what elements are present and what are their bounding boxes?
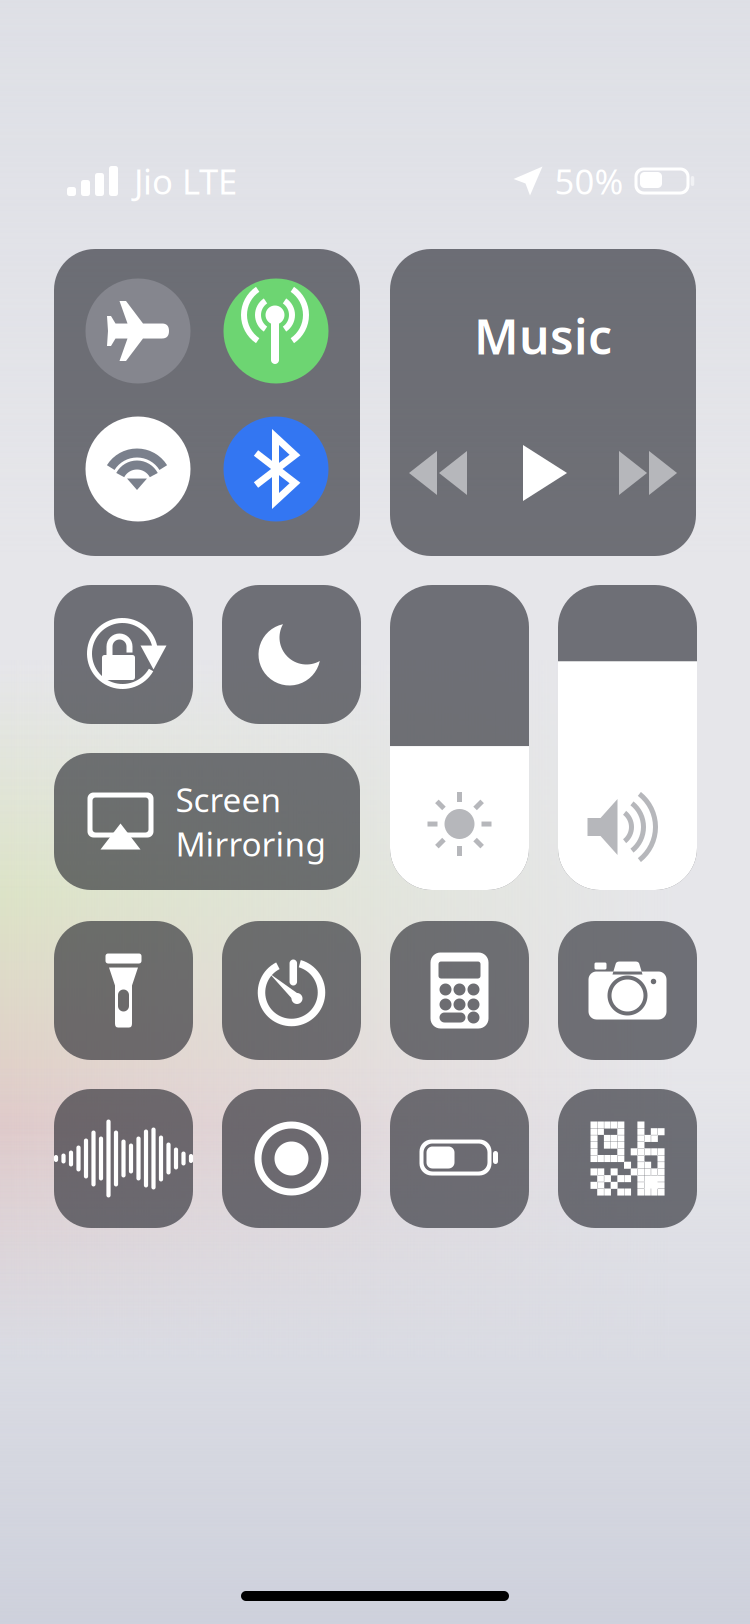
button[interactable]: Low Power Mode [390,1089,529,1228]
staticText: 50% [554,158,623,204]
button[interactable]: Volume [558,585,697,890]
button[interactable]: Screen Mirroring [54,753,360,890]
button[interactable]: Brightness [390,585,529,890]
button[interactable]: Screen Recording [222,1089,361,1228]
staticText: Music [474,304,612,368]
button[interactable]: Calculator [390,921,529,1060]
button[interactable]: Voice Memos [54,1089,193,1228]
button[interactable]: Airplane Mode [85,278,190,383]
button[interactable]: Timer [222,921,361,1060]
button[interactable]: Rotation Lock [54,585,193,724]
button[interactable]: Camera [558,921,697,1060]
button[interactable]: Wi-Fi [85,416,190,521]
staticText: Screen Mirroring [175,777,326,866]
button[interactable]: Next Track [619,451,677,495]
button[interactable]: Flashlight [54,921,193,1060]
button[interactable]: Play [523,445,567,501]
button[interactable]: Bluetooth [223,416,328,521]
staticText: Jio LTE [134,158,237,204]
button[interactable]: Do Not Disturb [222,585,361,724]
button[interactable]: Previous Track [409,451,467,495]
button[interactable]: Scan QR Code [558,1089,697,1228]
button[interactable]: Cellular Data [223,278,328,383]
